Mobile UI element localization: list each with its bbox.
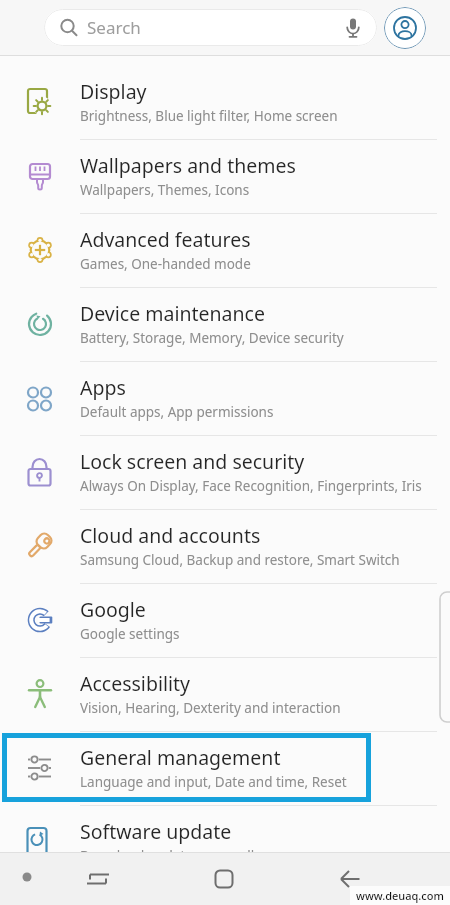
button[interactable]: Search [44, 9, 377, 46]
staticText: Wallpapers, Themes, Icons [80, 181, 250, 199]
staticText: Wallpapers and themes [80, 152, 296, 179]
staticText: Battery, Storage, Memory, Device securit… [80, 329, 344, 347]
staticText: Cloud and accounts [80, 522, 261, 549]
button[interactable]: Software update [0, 806, 450, 880]
staticText: Games, One-handed mode [80, 255, 251, 273]
staticText: Google [80, 596, 146, 623]
button[interactable]: Apps [0, 362, 450, 436]
staticText: Samsung Cloud, Backup and restore, Smart… [80, 551, 400, 569]
button[interactable]: Device maintenance [0, 288, 450, 362]
button[interactable]: Display [0, 66, 450, 140]
staticText: Accessibility [80, 670, 190, 697]
button[interactable] [62, 852, 134, 905]
staticText: General management [80, 744, 281, 771]
staticText: Display [80, 78, 147, 105]
button[interactable] [384, 7, 426, 49]
button[interactable]: Google [0, 584, 450, 658]
button[interactable]: General management [0, 732, 450, 806]
staticText: Device maintenance [80, 300, 265, 327]
button[interactable] [188, 852, 260, 905]
button[interactable]: Wallpapers and themes [0, 140, 450, 214]
staticText: Language and input, Date and time, Reset [80, 773, 347, 791]
staticText: www.deuaq.com [356, 888, 444, 903]
staticText: Google settings [80, 625, 180, 643]
staticText: Default apps, App permissions [80, 403, 274, 421]
button[interactable]: Advanced features [0, 214, 450, 288]
staticText: Apps [80, 374, 126, 401]
button[interactable]: Accessibility [0, 658, 450, 732]
staticText: Advanced features [80, 226, 251, 253]
staticText: Vision, Hearing, Dexterity and interacti… [80, 699, 341, 717]
button[interactable]: Lock screen and security [0, 436, 450, 510]
staticText: Brightness, Blue light filter, Home scre… [80, 107, 338, 125]
staticText: Search [87, 16, 141, 39]
staticText: Lock screen and security [80, 448, 305, 475]
staticText: Software update [80, 818, 232, 845]
staticText: Download updates manually [80, 847, 262, 865]
button[interactable] [314, 852, 386, 905]
staticText: Always On Display, Face Recognition, Fin… [80, 477, 422, 495]
button[interactable]: Cloud and accounts [0, 510, 450, 584]
